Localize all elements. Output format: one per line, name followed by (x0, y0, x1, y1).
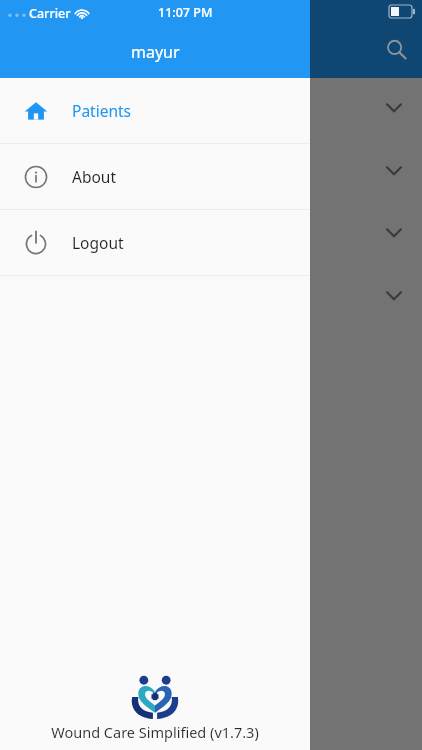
staticText: Carrier (29, 5, 71, 22)
button[interactable]: Search (378, 31, 414, 67)
button[interactable]: Expand (377, 153, 411, 187)
button[interactable]: Logout (0, 210, 310, 275)
button[interactable]: Patients (0, 78, 310, 143)
button[interactable]: About (0, 144, 310, 209)
button[interactable]: Expand (377, 90, 411, 124)
button[interactable]: Expand (377, 278, 411, 312)
staticText: Wound Care Simplified (v1.7.3) (51, 722, 259, 742)
staticText: Logout (72, 232, 124, 253)
staticText: 11:07 PM (158, 4, 213, 21)
staticText: About (72, 166, 116, 187)
staticText: mayur (131, 41, 180, 63)
button[interactable]: Expand (377, 215, 411, 249)
staticText: Patients (72, 100, 132, 121)
